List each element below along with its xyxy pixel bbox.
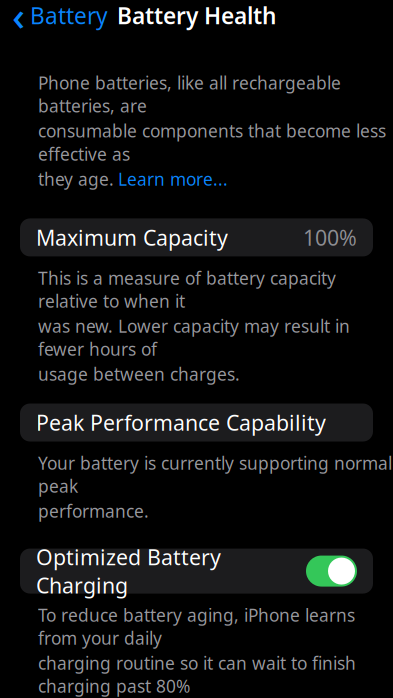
staticText: Phone batteries, like all rechargeable b… [38, 71, 341, 117]
staticText: was new. Lower capacity may result in fe… [38, 314, 350, 360]
staticText: consumable components that become less e… [38, 119, 386, 165]
staticText: Learn more... [118, 167, 228, 190]
staticText: Optimized Battery Charging [36, 543, 221, 599]
staticText: usage between charges. [38, 362, 240, 385]
button[interactable]: Maximum Capacity [20, 218, 373, 256]
staticText: they age. [38, 167, 114, 190]
staticText: Battery Health [117, 0, 276, 30]
staticText: performance. [38, 500, 149, 523]
button[interactable]: Peak Performance Capability [20, 403, 373, 441]
staticText: Peak Performance Capability [36, 408, 326, 437]
staticText: This is a measure of battery capacity re… [38, 266, 336, 312]
staticText: To reduce battery aging, iPhone learns f… [38, 604, 355, 650]
staticText: Your battery is currently supporting nor… [38, 451, 392, 497]
button[interactable]: ‹ [0, 0, 108, 46]
staticText: ‹ [12, 0, 25, 42]
button[interactable]: Optimized Battery Charging [20, 549, 373, 594]
staticText: charging routine so it can wait to finis… [38, 652, 356, 698]
staticText: 100% [303, 223, 357, 252]
staticText: Maximum Capacity [36, 223, 228, 252]
staticText: Battery [30, 0, 108, 30]
button[interactable]: Learn more... [118, 167, 228, 190]
